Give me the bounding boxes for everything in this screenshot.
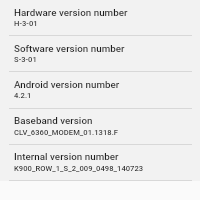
staticText: Baseband version [14,115,93,126]
staticText: Hardware version number [14,7,128,18]
staticText: Android version number [14,79,120,90]
staticText: Internal version number [14,151,119,162]
button[interactable]: Hardware version number [0,0,200,36]
staticText: CLV_6360_MODEM_01.1318.F [14,128,119,137]
staticText: 4.2.1 [14,91,32,100]
staticText: S-3-01 [14,55,37,64]
staticText: K900_ROW_1_S_2_009_0498_140723 [14,164,144,173]
staticText: H-3-01 [14,19,38,28]
button[interactable]: Android version number [0,72,200,109]
button[interactable]: Baseband version [0,109,200,145]
button[interactable]: Internal version number [0,145,200,181]
button[interactable]: Software version number [0,36,200,72]
staticText: Software version number [14,43,125,54]
